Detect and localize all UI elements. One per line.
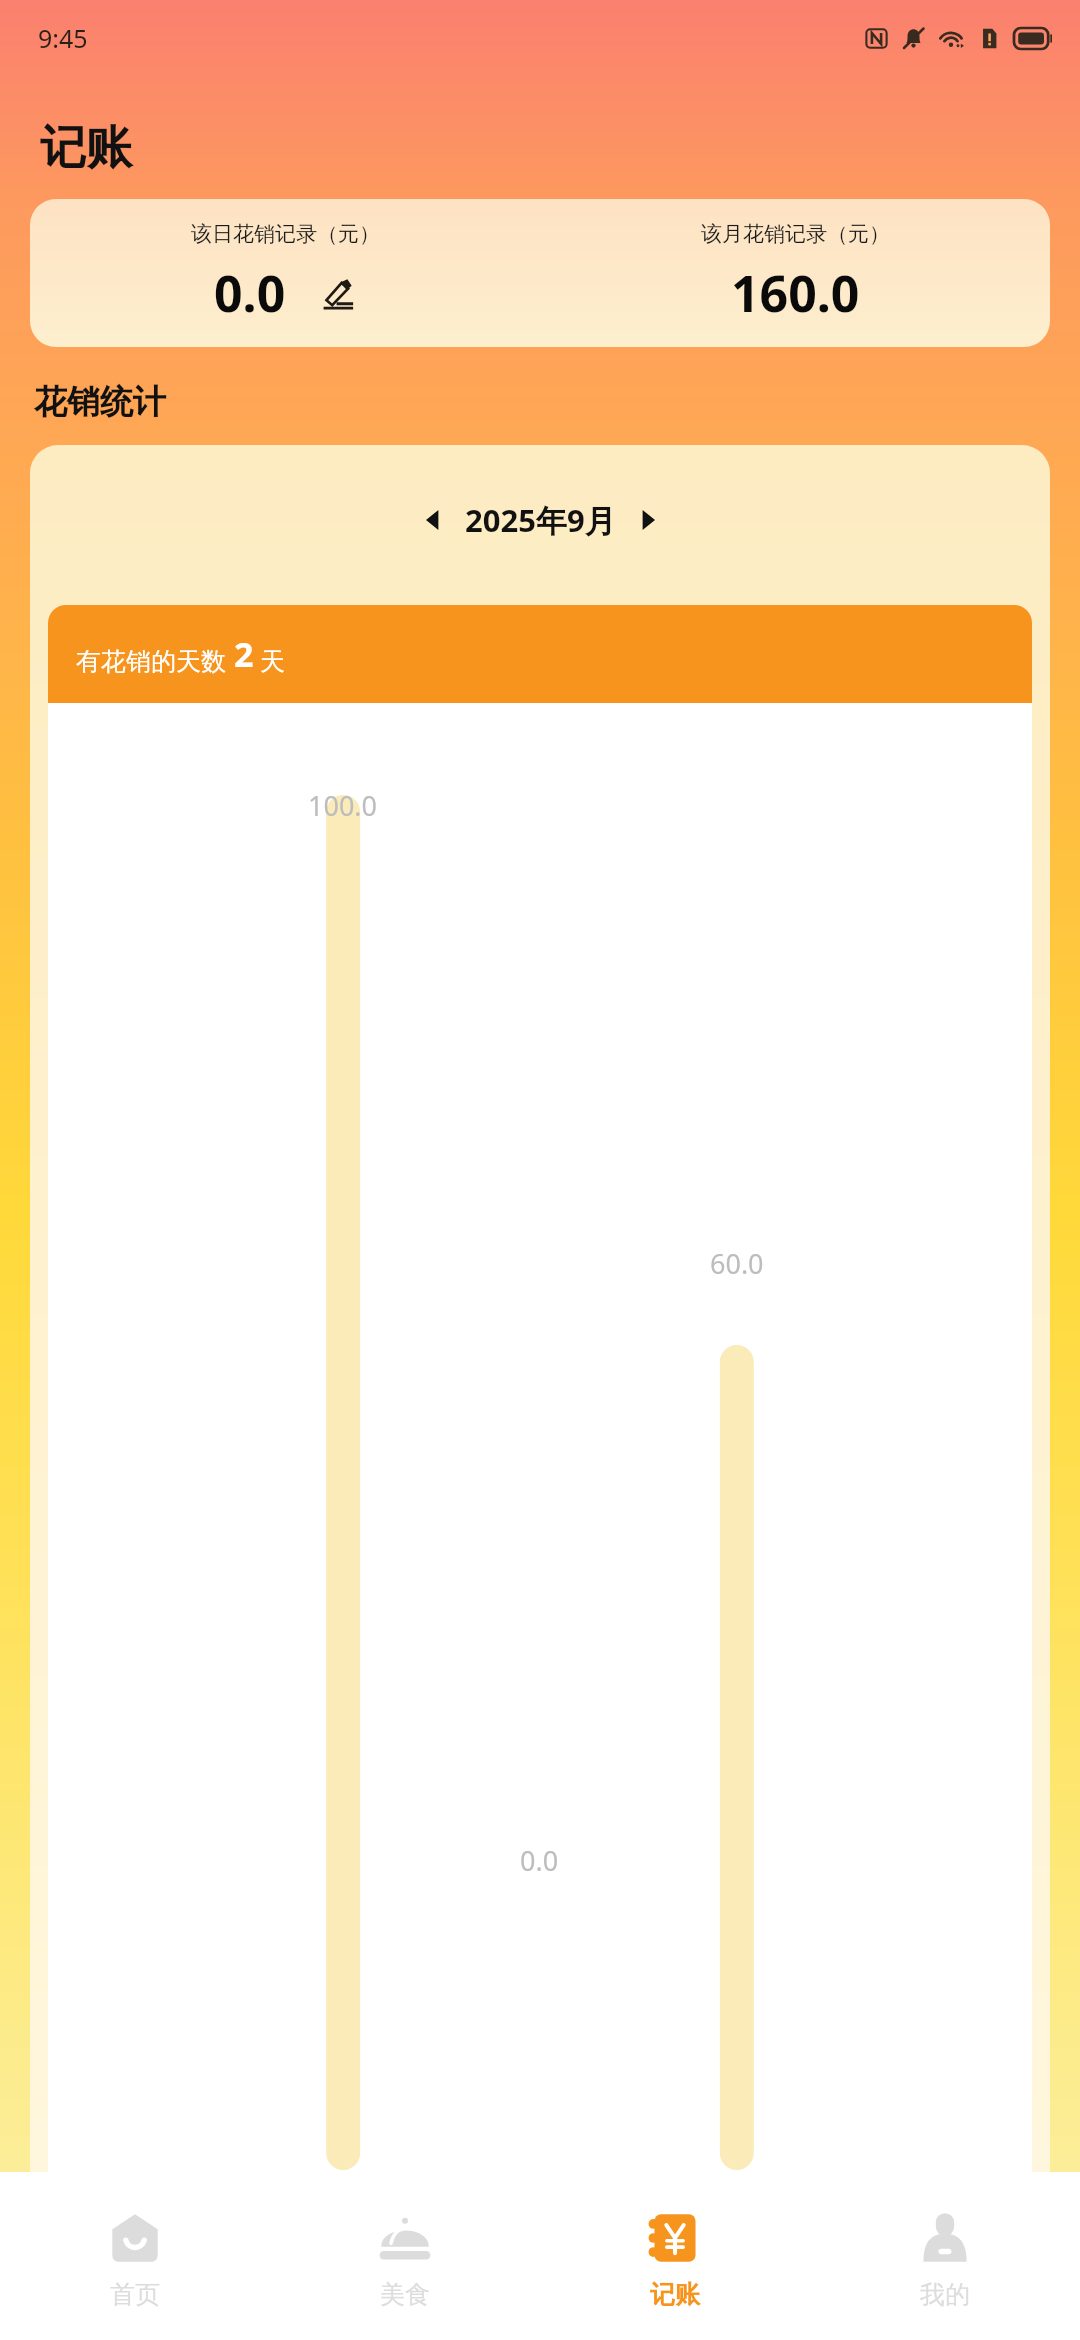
staticText: 元 — [950, 2279, 976, 2312]
staticText: 2 — [234, 631, 254, 677]
staticText: 花销统计 — [34, 381, 166, 423]
button[interactable]: 下个月 — [630, 503, 664, 537]
button[interactable]: 我的 — [810, 2172, 1080, 2340]
staticText: 0.0 — [892, 2260, 946, 2312]
staticText: 美食 — [380, 2279, 430, 2310]
staticText: 记账 — [650, 2279, 700, 2310]
staticText: 0.0 — [520, 1842, 559, 1879]
staticText: 100.0 — [308, 787, 378, 824]
button[interactable]: 该日花销记录（元） — [30, 199, 1050, 347]
staticText: 我的 — [920, 2279, 970, 2310]
staticText: 9月27日 — [684, 2188, 789, 2226]
staticText: 2025年9月 — [465, 499, 616, 541]
staticText: 160.0 — [731, 259, 860, 327]
staticText: 该日花销记录（元） — [191, 221, 380, 247]
button[interactable]: 记账 — [540, 2172, 810, 2340]
button[interactable]: 上个月 — [417, 503, 451, 537]
staticText: 记账 — [40, 119, 132, 177]
staticText: 9:45 — [38, 21, 88, 55]
staticText: 9月 — [911, 2188, 956, 2226]
staticText: 0.0 — [214, 259, 286, 327]
staticText: 日 — [132, 2191, 160, 2226]
staticText: 天 — [260, 646, 285, 677]
button[interactable]: 首页 — [0, 2172, 270, 2340]
staticText: 该月花销记录（元） — [701, 221, 890, 247]
staticText: 首页 — [110, 2279, 160, 2310]
staticText: 有花销的天数 — [76, 646, 226, 677]
button[interactable]: 9月26日 花销 — [48, 2232, 1032, 2340]
button[interactable]: 有花销的天数 — [48, 605, 1032, 703]
button[interactable]: 编辑 — [320, 275, 356, 311]
staticText: 60.0 — [710, 1245, 764, 1282]
button[interactable]: 美食 — [270, 2172, 540, 2340]
